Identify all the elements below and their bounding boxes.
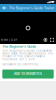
staticText: The Beginner's Guide [2,45,36,49]
staticText: Published: Oct 1, 2015 [2,58,35,61]
staticText: 0:00 / 2:21 [1,38,17,41]
button[interactable]: ADD TO FAVORITES [2,69,54,78]
button[interactable]: Back [0,4,9,12]
staticText: The Beginner's Guide Trailer [9,6,54,10]
button[interactable]: Settings [43,38,47,42]
staticText: ADD TO FAVORITES [14,72,42,76]
staticText: Uploaded by: Everything [2,63,38,66]
button[interactable]: Full screen [50,38,54,42]
staticText: The Beginner's Guide is a narrative vide… [2,49,53,58]
